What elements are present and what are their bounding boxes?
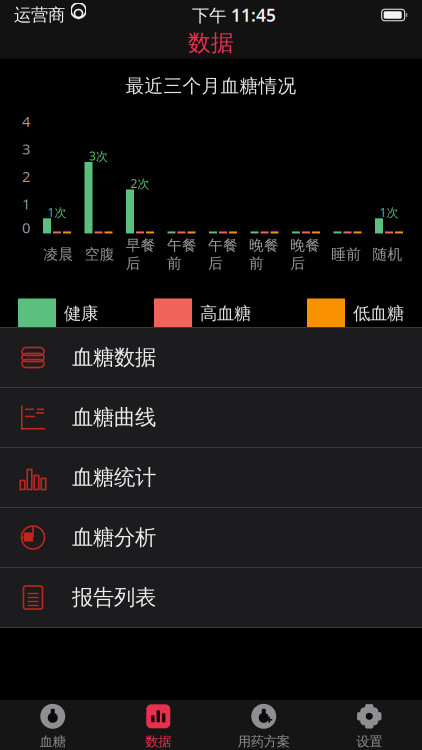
button[interactable]: 血糖 xyxy=(0,697,105,750)
staticText: 1 xyxy=(22,194,30,213)
staticText: 设置 xyxy=(356,733,382,750)
staticText: 3 xyxy=(22,139,30,158)
staticText: 午餐后 xyxy=(208,236,238,272)
button[interactable]: 数据 xyxy=(105,697,211,750)
staticText: 下午 11:45 xyxy=(192,3,276,26)
button[interactable]: 设置 xyxy=(316,697,422,750)
button[interactable]: 血糖数据 xyxy=(0,328,422,388)
staticText: 睡前 xyxy=(331,245,361,263)
button[interactable]: 数据 xyxy=(0,26,422,60)
staticText: 低血糖 xyxy=(353,303,404,324)
staticText: 晚餐后 xyxy=(290,236,320,272)
staticText: 凌晨 xyxy=(44,245,74,263)
staticText: 0 xyxy=(22,218,30,237)
button[interactable]: 血糖分析 xyxy=(0,508,422,568)
staticText: 血糖 xyxy=(40,733,66,750)
staticText: 数据 xyxy=(188,29,234,57)
staticText: 最近三个月血糖情况 xyxy=(125,74,296,97)
staticText: 血糖曲线 xyxy=(72,404,156,431)
staticText: 早餐后 xyxy=(126,236,156,272)
staticText: 血糖统计 xyxy=(72,464,156,491)
staticText: 报告列表 xyxy=(72,584,156,611)
staticText: 午餐前 xyxy=(167,236,197,272)
button[interactable]: 报告列表 xyxy=(0,568,422,628)
staticText: 用药方案 xyxy=(238,733,290,750)
staticText: 空腹 xyxy=(85,245,115,263)
staticText: 1次 xyxy=(379,204,398,220)
staticText: 2 xyxy=(22,166,30,186)
staticText: 4 xyxy=(22,111,30,131)
staticText: 1次 xyxy=(47,204,66,220)
button[interactable]: 用药方案 xyxy=(211,697,316,750)
button[interactable]: 血糖统计 xyxy=(0,448,422,508)
staticText: 健康 xyxy=(64,303,98,324)
staticText: 高血糖 xyxy=(200,303,251,324)
staticText: 2次 xyxy=(130,175,149,191)
staticText: 血糖数据 xyxy=(72,344,156,371)
button[interactable]: 血糖曲线 xyxy=(0,388,422,448)
staticText: 运营商 xyxy=(14,4,65,26)
staticText: 晚餐前 xyxy=(249,236,279,272)
staticText: 血糖分析 xyxy=(72,524,156,551)
staticText: 随机 xyxy=(372,245,402,263)
staticText: 3次 xyxy=(89,148,108,164)
staticText: 数据 xyxy=(145,733,171,750)
